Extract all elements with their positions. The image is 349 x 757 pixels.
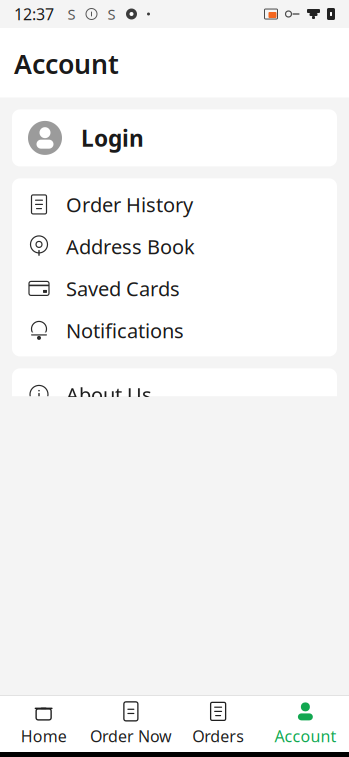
staticText: Login xyxy=(81,123,144,153)
button[interactable]: Notifications xyxy=(12,309,337,351)
button[interactable]: Home xyxy=(0,698,87,750)
button[interactable]: Address Book xyxy=(12,225,337,267)
button[interactable]: Order History xyxy=(12,183,337,225)
staticText: Saved Cards xyxy=(66,275,180,302)
staticText: Address Book xyxy=(66,233,195,260)
staticText: Order History xyxy=(66,191,193,218)
staticText: Account xyxy=(14,46,119,81)
staticText: About Us xyxy=(66,381,152,408)
staticText: Orders xyxy=(192,725,244,747)
button[interactable]: Login xyxy=(12,109,337,166)
staticText: Account xyxy=(274,725,336,747)
button[interactable]: About Us xyxy=(12,373,337,415)
staticText: Order Now xyxy=(90,725,172,747)
button[interactable]: Order Now xyxy=(87,698,174,750)
button[interactable]: Saved Cards xyxy=(12,267,337,309)
staticText: S xyxy=(107,4,115,24)
staticText: Home xyxy=(21,725,67,747)
button[interactable]: Account xyxy=(262,698,349,750)
button[interactable]: Orders xyxy=(174,698,262,750)
staticText: S xyxy=(67,4,75,24)
staticText: Notifications xyxy=(66,317,184,344)
staticText: 12:37 xyxy=(14,3,54,25)
